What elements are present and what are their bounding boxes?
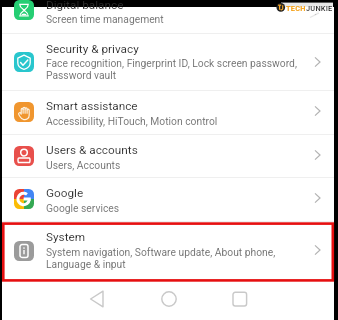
staticText: Google [46,186,84,200]
staticText: TECH [286,4,306,13]
button[interactable]: Smart assistance [2,90,334,134]
button[interactable]: Google [2,177,334,221]
button[interactable]: Digital balance [2,7,334,33]
staticText: System [46,230,86,244]
staticText: Users & accounts [46,143,138,157]
button[interactable]: Security & privacy [2,33,334,90]
button[interactable]: Home [159,288,181,310]
staticText: Language & input [46,258,126,270]
button[interactable]: System [2,221,334,280]
staticText: Security & privacy [46,42,139,56]
staticText: Users, Accounts [46,159,121,171]
staticText: Google services [46,202,120,214]
staticText: System navigation, Software update, Abou… [46,246,276,258]
button[interactable]: Recent apps [230,288,252,310]
staticText: Accessibility, HiTouch, Motion control [46,115,218,127]
staticText: Password vault [46,69,117,81]
staticText: JUNKIE [306,4,333,13]
staticText: Digital balance [46,0,124,12]
staticText: Screen time management [46,13,164,25]
staticText: Smart assistance [46,99,138,113]
staticText: Face recognition, Fingerprint ID, Lock s… [46,57,297,69]
button[interactable]: Users & accounts [2,134,334,177]
button[interactable]: Back [87,288,109,310]
